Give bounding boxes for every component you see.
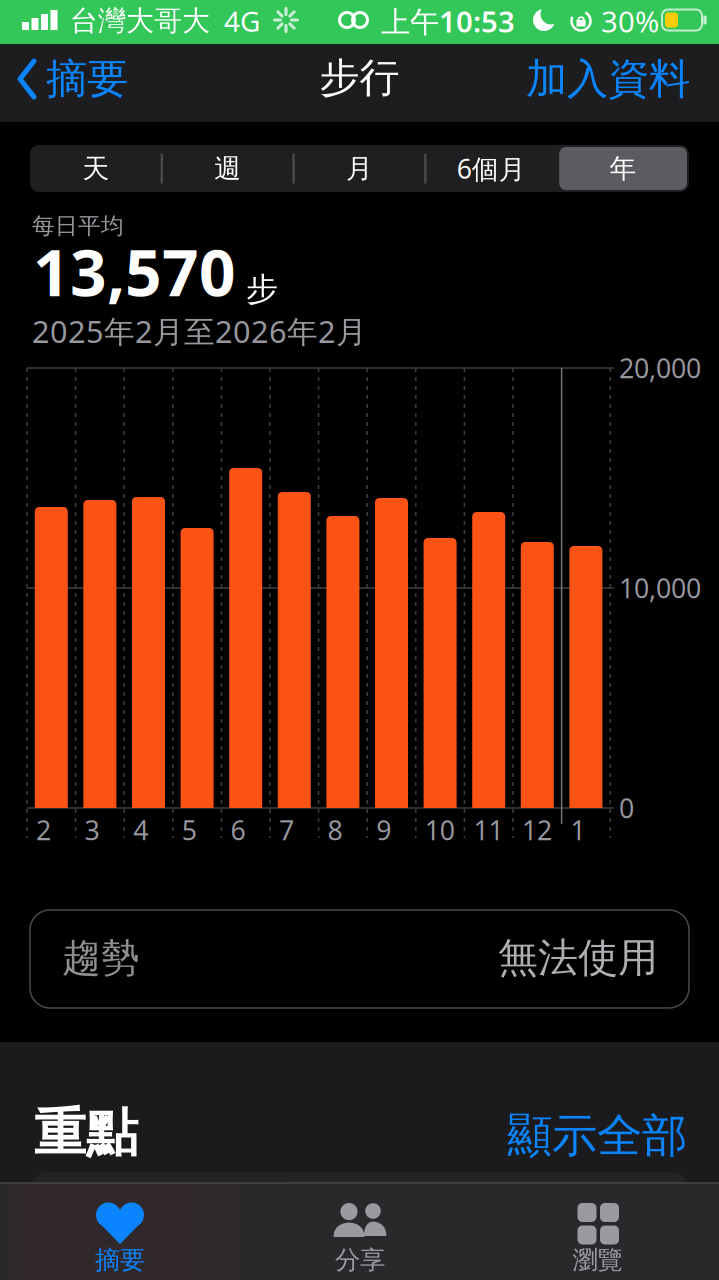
staticText: 4: [133, 812, 148, 848]
staticText: 4G: [224, 2, 260, 40]
staticText: 上午10:53: [381, 1, 515, 40]
staticText: 9: [376, 812, 391, 848]
staticText: 天: [82, 152, 109, 185]
staticText: 週: [214, 152, 241, 185]
staticText: 台灣大哥大: [70, 4, 210, 38]
staticText: 11: [473, 812, 503, 848]
staticText: 趨勢: [62, 934, 140, 982]
staticText: 6個月: [457, 151, 526, 186]
button[interactable]: 週: [164, 147, 292, 190]
button[interactable]: 分享: [324, 1203, 396, 1279]
staticText: 摘要: [46, 54, 128, 104]
staticText: 13,570: [33, 229, 236, 314]
staticText: 步: [246, 270, 278, 309]
button[interactable]: 顯示全部: [477, 1108, 687, 1164]
staticText: 10: [425, 812, 455, 848]
button[interactable]: 天: [32, 147, 160, 190]
staticText: 20,000: [619, 350, 701, 386]
staticText: 步行: [319, 53, 399, 102]
button[interactable]: 年: [559, 147, 687, 190]
staticText: 每日平均: [32, 212, 124, 240]
staticText: 2: [36, 812, 51, 848]
button[interactable]: 6個月: [427, 147, 555, 190]
button[interactable]: 月: [296, 147, 423, 190]
button[interactable]: 返回摘要: [16, 47, 176, 111]
staticText: 0: [619, 790, 634, 826]
staticText: 30%: [601, 1, 659, 40]
staticText: 3: [85, 812, 100, 848]
staticText: 摘要: [95, 1244, 145, 1275]
button[interactable]: 加入資料: [500, 47, 690, 111]
staticText: 分享: [335, 1244, 385, 1275]
staticText: 6: [230, 812, 245, 848]
staticText: 12: [522, 812, 552, 848]
staticText: 加入資料: [526, 54, 690, 104]
staticText: 無法使用: [498, 933, 658, 982]
staticText: 10,000: [619, 570, 701, 606]
button[interactable]: 瀏覽: [561, 1203, 633, 1279]
staticText: 1: [571, 812, 586, 848]
staticText: 8: [328, 812, 343, 848]
button[interactable]: 摘要: [84, 1203, 156, 1279]
staticText: 顯示全部: [507, 1108, 687, 1164]
staticText: 5: [182, 812, 197, 848]
staticText: 瀏覽: [572, 1244, 622, 1275]
staticText: 重點: [34, 1101, 138, 1165]
staticText: 月: [346, 152, 373, 185]
staticText: 年: [610, 152, 637, 185]
staticText: 7: [279, 812, 294, 848]
staticText: 2025年2月至2026年2月: [32, 311, 367, 351]
